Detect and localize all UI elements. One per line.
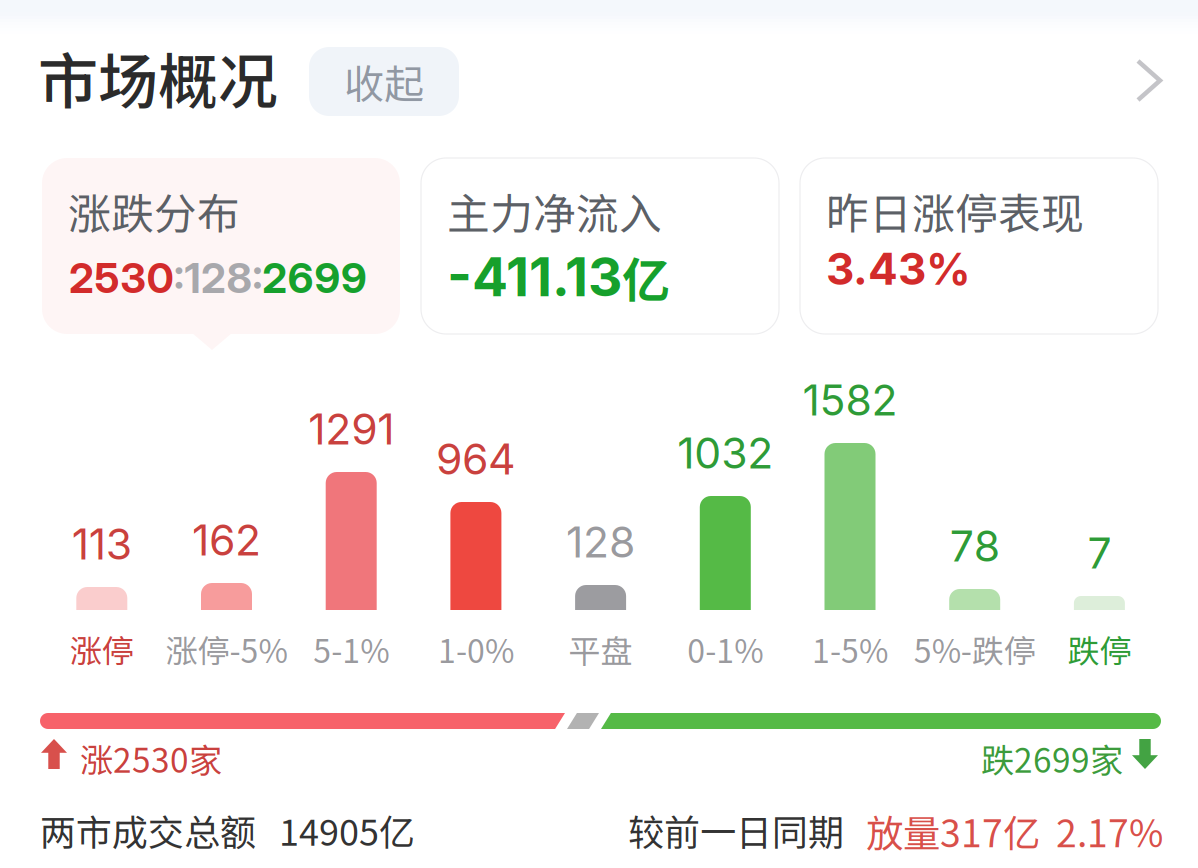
- staticText: 2530: [69, 253, 174, 303]
- staticText: 3.43%: [826, 242, 971, 295]
- staticText: 涨停: [70, 626, 134, 672]
- staticText: 1582: [802, 374, 897, 426]
- staticText: 1291: [308, 403, 394, 455]
- button[interactable]: 展开全部: [1116, 39, 1182, 122]
- staticText: :128:: [174, 253, 262, 303]
- staticText: 平盘: [569, 626, 633, 672]
- staticText: 5-1%: [313, 626, 389, 672]
- staticText: 涨停-5%: [165, 626, 287, 672]
- staticText: 128: [566, 516, 635, 568]
- staticText: 5%-跌停: [914, 626, 1036, 672]
- staticText: 964: [436, 433, 516, 485]
- staticText: 收起: [344, 52, 424, 110]
- staticText: 1032: [677, 427, 773, 479]
- staticText: 两市成交总额: [40, 804, 256, 856]
- staticText: 162: [192, 514, 261, 566]
- staticText: 2699: [262, 253, 367, 303]
- staticText: 昨日涨停表现: [826, 180, 1084, 242]
- staticText: 113: [72, 518, 132, 570]
- staticText: 亿: [622, 242, 670, 311]
- staticText: 7: [1087, 527, 1111, 579]
- staticText: 跌停: [1067, 626, 1131, 672]
- staticText: 1-0%: [438, 626, 514, 672]
- staticText: 14905亿: [279, 804, 415, 856]
- staticText: 主力净流入: [447, 180, 662, 242]
- staticText: 跌2699家: [981, 734, 1123, 782]
- staticText: 放量317亿 2.17%: [866, 804, 1163, 858]
- staticText: 78: [950, 520, 1000, 572]
- staticText: 涨2530家: [80, 734, 222, 782]
- staticText: 较前一日同期: [628, 804, 844, 856]
- staticText: 涨跌分布: [68, 180, 240, 242]
- staticText: 市场概况: [38, 34, 278, 121]
- staticText: 1-5%: [812, 626, 888, 672]
- button[interactable]: 收起: [309, 47, 459, 116]
- staticText: -411.13: [447, 244, 622, 309]
- staticText: 0-1%: [687, 626, 763, 672]
